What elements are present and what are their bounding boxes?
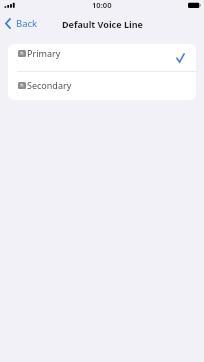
staticText: Default Voice Line (62, 18, 143, 30)
button[interactable]: Primary (8, 44, 196, 71)
other: Selected (176, 53, 185, 63)
staticText: Secondary (27, 79, 72, 91)
staticText: 10:00 (92, 0, 112, 10)
other: Back (5, 18, 11, 29)
button[interactable]: Back (0, 14, 44, 32)
staticText: Primary (27, 47, 61, 59)
button[interactable]: Secondary (8, 72, 196, 100)
staticText: Back (16, 17, 38, 30)
